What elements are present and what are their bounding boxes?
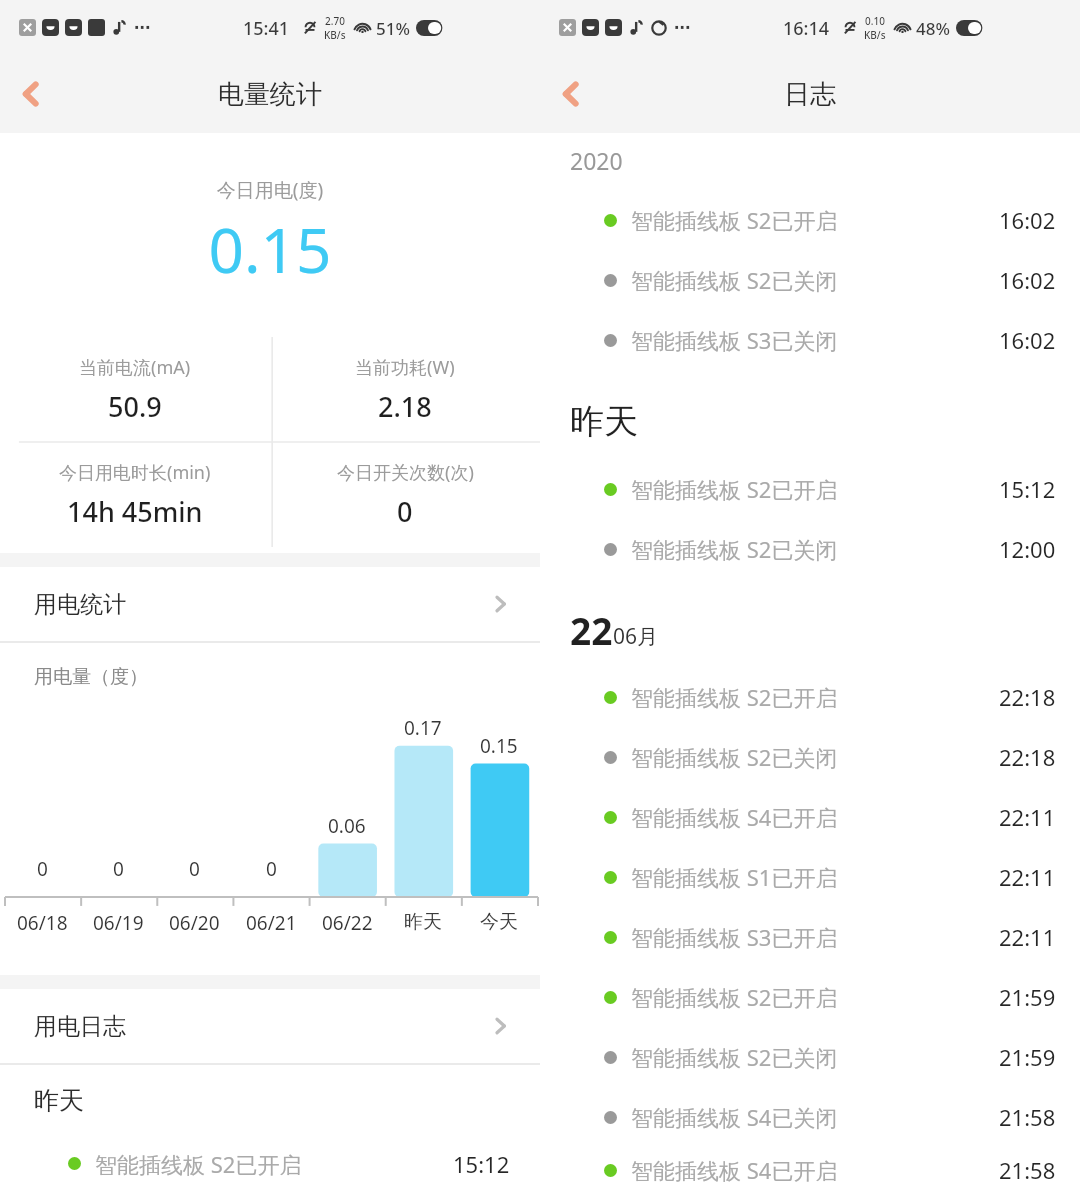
button[interactable]: 智能插线板 S2已开启 (0, 1134, 540, 1193)
staticText: 智能插线板 S2已开启 (631, 205, 838, 235)
button[interactable]: 智能插线板 S3已关闭 (540, 310, 1080, 370)
staticText: 14h 45min (67, 493, 203, 530)
staticText: 日志 (784, 78, 836, 111)
staticText: 22:11 (999, 802, 1056, 832)
staticText: 2020 (570, 145, 623, 176)
staticText: 0.06 (328, 813, 366, 839)
staticText: 0.10 (865, 14, 885, 28)
staticText: 智能插线板 S2已关闭 (631, 534, 838, 564)
staticText: 15:12 (453, 1149, 510, 1179)
staticText: 21:58 (999, 1155, 1056, 1185)
staticText: 21:59 (999, 1042, 1056, 1072)
staticText: 16:02 (999, 325, 1056, 355)
staticText: 智能插线板 S4已关闭 (631, 1102, 838, 1132)
staticText: 电量统计 (218, 78, 322, 111)
staticText: 当前功耗(W) (355, 355, 455, 380)
staticText: 智能插线板 S2已开启 (95, 1149, 302, 1179)
button[interactable]: 智能插线板 S2已开启 (540, 459, 1080, 519)
staticText: 昨天 (404, 910, 442, 934)
staticText: 0.15 (0, 207, 540, 291)
staticText: KB/s (324, 28, 346, 42)
button[interactable]: 智能插线板 S2已关闭 (540, 727, 1080, 787)
staticText: 22:18 (999, 682, 1056, 712)
staticText: 0 (266, 856, 277, 882)
staticText: 21:58 (999, 1102, 1056, 1132)
staticText: 昨天 (34, 1085, 84, 1116)
staticText: 用电量（度） (34, 665, 148, 689)
staticText: 22:11 (999, 922, 1056, 952)
button[interactable]: 用电统计 (0, 567, 540, 641)
button[interactable]: 智能插线板 S2已开启 (540, 667, 1080, 727)
staticText: 0 (397, 493, 413, 530)
staticText: ⋯ (134, 18, 150, 37)
staticText: 22:11 (999, 862, 1056, 892)
staticText: 今日用电(度) (0, 177, 540, 203)
staticText: 智能插线板 S3已关闭 (631, 325, 838, 355)
staticText: 0.17 (404, 715, 442, 741)
staticText: 06/18 (17, 910, 68, 936)
button[interactable]: 智能插线板 S2已关闭 (540, 519, 1080, 579)
staticText: 15:12 (999, 474, 1056, 504)
staticText: 智能插线板 S2已开启 (631, 682, 838, 712)
staticText: 当前电流(mA) (79, 355, 191, 380)
staticText: 06/19 (93, 910, 144, 936)
staticText: 06/20 (169, 910, 220, 936)
staticText: 用电日志 (34, 1012, 126, 1041)
staticText: 0 (37, 856, 48, 882)
button[interactable]: 智能插线板 S2已开启 (540, 967, 1080, 1027)
staticText: 智能插线板 S2已关闭 (631, 742, 838, 772)
button[interactable]: 智能插线板 S2已关闭 (540, 1027, 1080, 1087)
staticText: 智能插线板 S4已开启 (631, 802, 838, 832)
staticText: ⋯ (674, 18, 690, 37)
staticText: 用电统计 (34, 590, 126, 619)
button[interactable]: 智能插线板 S4已关闭 (540, 1087, 1080, 1147)
staticText: 50.9 (108, 388, 162, 425)
staticText: 16:02 (999, 205, 1056, 235)
staticText: 2.70 (325, 14, 345, 28)
button[interactable]: Back (540, 63, 602, 125)
staticText: 今日用电时长(min) (59, 460, 211, 485)
staticText: 06月 (613, 622, 659, 651)
staticText: 2.18 (378, 388, 432, 425)
staticText: 今天 (480, 910, 518, 934)
button[interactable]: 智能插线板 S3已开启 (540, 907, 1080, 967)
button[interactable]: Back (0, 63, 62, 125)
staticText: 今日开关次数(次) (337, 460, 474, 485)
button[interactable]: 智能插线板 S1已开启 (540, 847, 1080, 907)
staticText: 昨天 (570, 400, 638, 443)
button[interactable]: 智能插线板 S4已开启 (540, 787, 1080, 847)
staticText: 智能插线板 S2已开启 (631, 982, 838, 1012)
staticText: 智能插线板 S3已开启 (631, 922, 838, 952)
staticText: 智能插线板 S2已关闭 (631, 1042, 838, 1072)
staticText: 0 (113, 856, 124, 882)
staticText: 0.15 (480, 733, 518, 759)
staticText: 21:59 (999, 982, 1056, 1012)
staticText: 0 (189, 856, 200, 882)
button[interactable]: 智能插线板 S2已关闭 (540, 250, 1080, 310)
staticText: 22 (570, 605, 613, 655)
staticText: 16:02 (999, 265, 1056, 295)
button[interactable]: 智能插线板 S2已开启 (540, 190, 1080, 250)
staticText: 智能插线板 S1已开启 (631, 862, 838, 892)
staticText: 51% (376, 17, 410, 40)
button[interactable]: 智能插线板 S4已开启 (540, 1147, 1080, 1193)
staticText: 06/21 (246, 910, 297, 936)
staticText: 06/22 (322, 910, 373, 936)
button[interactable]: 用电日志 (0, 989, 540, 1063)
staticText: 智能插线板 S2已关闭 (631, 265, 838, 295)
staticText: 48% (916, 17, 950, 40)
staticText: 22:18 (999, 742, 1056, 772)
staticText: KB/s (864, 28, 886, 42)
staticText: 智能插线板 S4已开启 (631, 1155, 838, 1185)
staticText: 12:00 (999, 534, 1056, 564)
staticText: 16:14 (783, 16, 830, 41)
staticText: 15:41 (243, 16, 290, 41)
staticText: 智能插线板 S2已开启 (631, 474, 838, 504)
